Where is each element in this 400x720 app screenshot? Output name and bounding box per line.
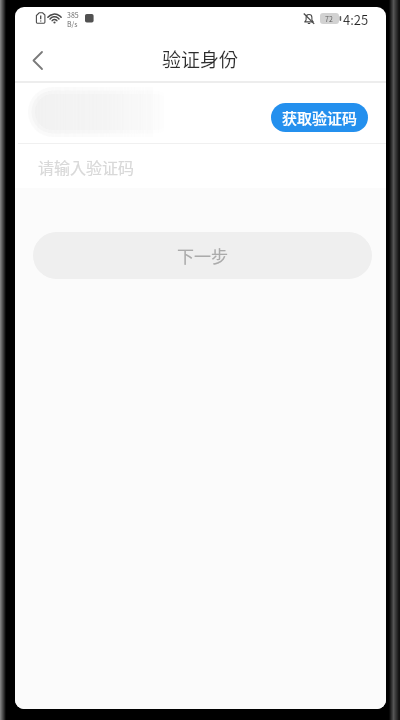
staticText: 385 bbox=[67, 10, 79, 20]
button[interactable]: 下一步 bbox=[33, 232, 372, 279]
staticText: 请输入验证码 bbox=[38, 155, 135, 178]
button[interactable] bbox=[15, 36, 59, 80]
staticText: 下一步 bbox=[177, 243, 228, 268]
staticText: 4:25 bbox=[343, 10, 369, 29]
staticText: 验证身份 bbox=[162, 45, 239, 73]
staticText: B/s bbox=[67, 19, 78, 29]
staticText: 获取验证码 bbox=[282, 107, 358, 129]
button[interactable]: 获取验证码 bbox=[271, 103, 368, 132]
button[interactable]: 请输入验证码 bbox=[15, 144, 386, 188]
staticText: 72 bbox=[325, 14, 333, 24]
